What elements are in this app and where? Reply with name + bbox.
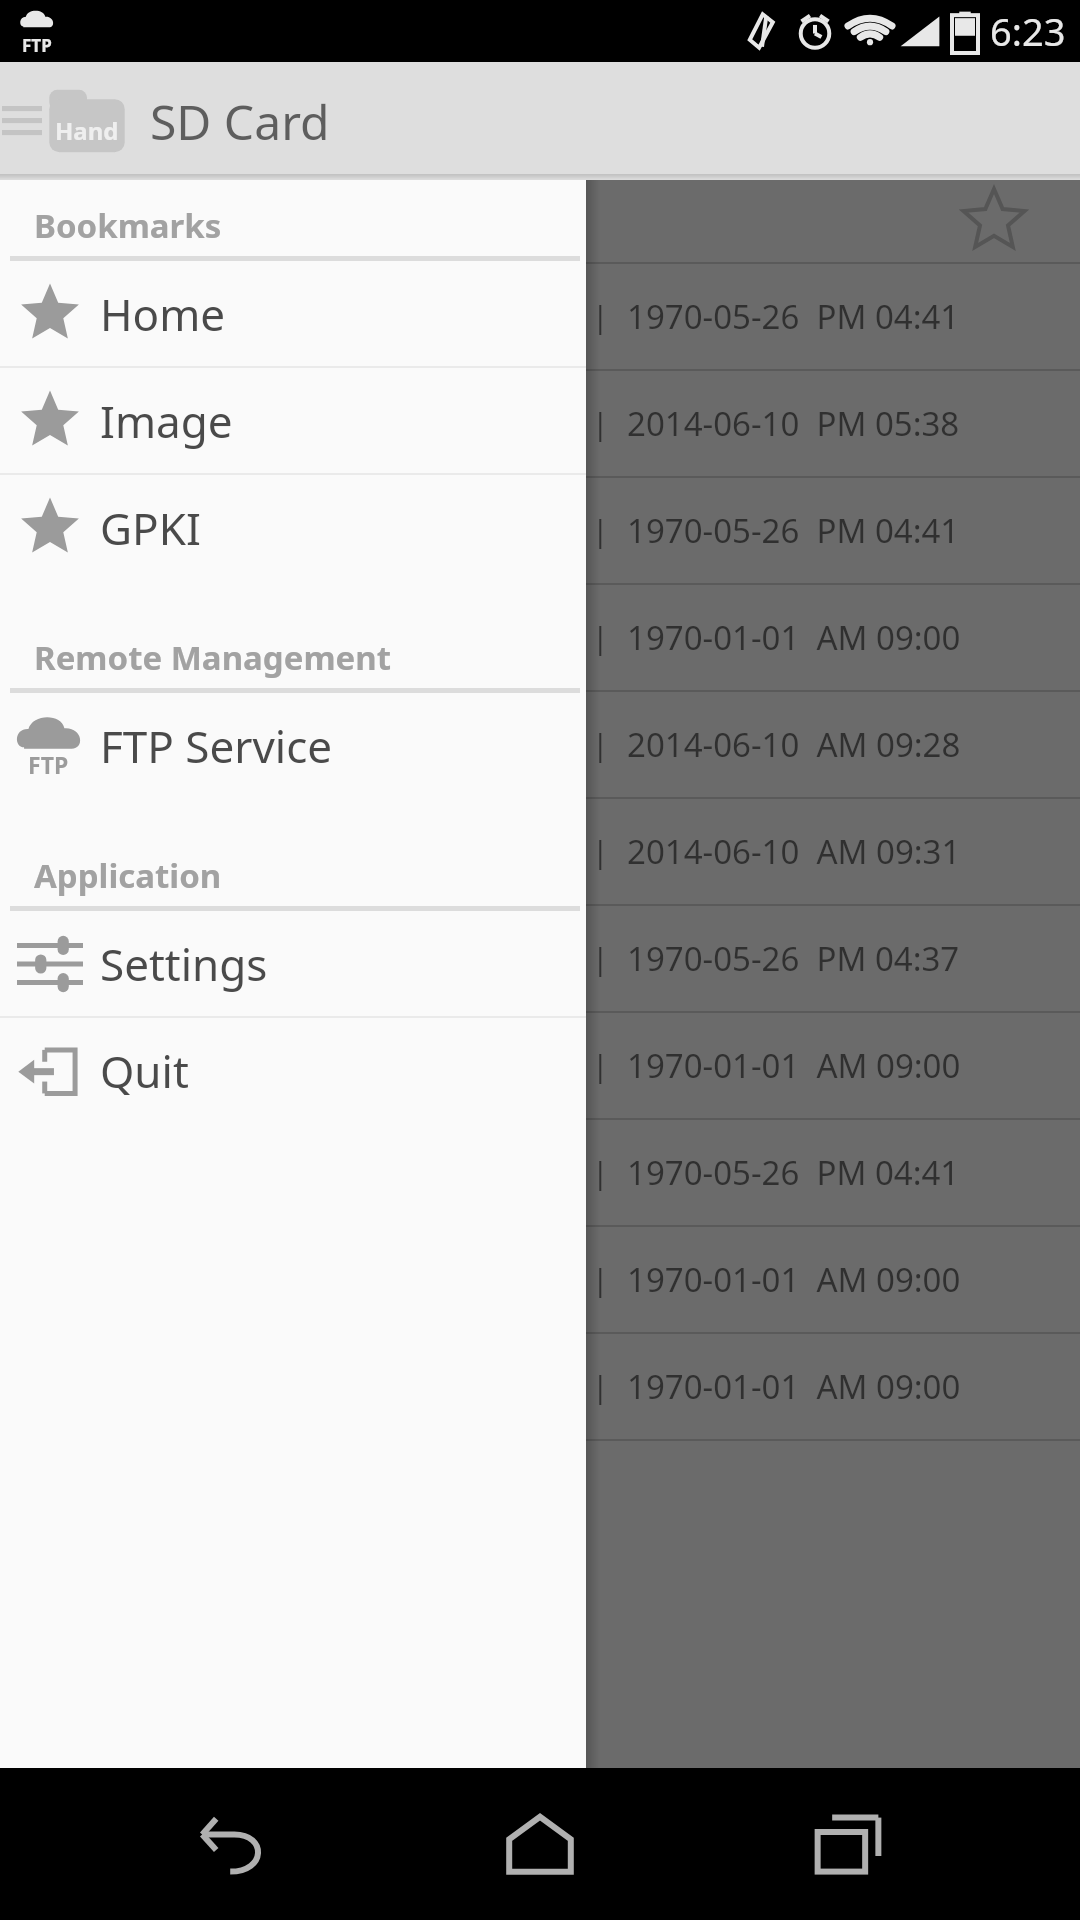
button[interactable]: Settings — [0, 911, 586, 1016]
staticText: | — [592, 296, 609, 337]
staticText: 1970-05-26 PM 04:37 — [627, 936, 960, 981]
staticText: 2014-06-10 AM 09:28 — [627, 722, 961, 767]
staticText: 1970-01-01 AM 09:00 — [627, 615, 961, 660]
button[interactable]: | — [0, 478, 1080, 583]
button[interactable]: | — [0, 1013, 1080, 1118]
staticText: | — [592, 1045, 609, 1086]
staticText: | — [592, 617, 609, 658]
button[interactable]: Quit — [0, 1018, 586, 1123]
staticText: | — [592, 403, 609, 444]
staticText: Application — [34, 853, 222, 898]
button[interactable]: Recent apps — [773, 1768, 923, 1920]
button[interactable]: | — [0, 799, 1080, 904]
staticText: 1970-01-01 AM 09:00 — [627, 1043, 961, 1088]
staticText: Home — [100, 284, 226, 344]
staticText: | — [592, 1152, 609, 1193]
staticText: 2014-06-10 AM 09:31 — [627, 829, 961, 874]
staticText: | — [592, 938, 609, 979]
staticText: | — [592, 831, 609, 872]
button[interactable]: | — [0, 692, 1080, 797]
button[interactable]: | — [0, 906, 1080, 1011]
button[interactable]: | — [0, 1227, 1080, 1332]
staticText: SD Card — [150, 89, 330, 154]
staticText: FTP Service — [100, 716, 333, 776]
staticText: Bookmarks — [34, 203, 222, 248]
button[interactable]: | — [0, 1120, 1080, 1225]
staticText: 6:23 — [990, 5, 1066, 57]
staticText: | — [592, 724, 609, 765]
button[interactable]: | — [0, 264, 1080, 369]
staticText: | — [592, 510, 609, 551]
staticText: Image — [100, 391, 233, 451]
button[interactable]: GPKI — [0, 475, 586, 580]
button[interactable]: Back — [158, 1768, 308, 1920]
staticText: | — [592, 1366, 609, 1407]
staticText: 1970-05-26 PM 04:41 — [627, 1150, 960, 1195]
button[interactable]: Home — [0, 261, 586, 366]
button[interactable]: Home — [465, 1768, 615, 1920]
staticText: FTP — [22, 34, 52, 57]
staticText: 1970-05-26 PM 04:41 — [627, 294, 960, 339]
button[interactable]: | — [0, 1334, 1080, 1439]
button[interactable]: | — [0, 585, 1080, 690]
staticText: | — [592, 1259, 609, 1300]
staticText: 1970-01-01 AM 09:00 — [627, 1257, 961, 1302]
staticText: FTP — [28, 749, 69, 780]
staticText: Remote Management — [34, 635, 392, 680]
staticText: 2014-06-10 PM 05:38 — [627, 401, 960, 446]
staticText: 1970-05-26 PM 04:41 — [627, 508, 960, 553]
staticText: 1970-01-01 AM 09:00 — [627, 1364, 961, 1409]
staticText: Settings — [100, 934, 268, 994]
button[interactable]: Image — [0, 368, 586, 473]
staticText: Quit — [100, 1041, 189, 1101]
staticText: Hand — [55, 114, 119, 147]
staticText: GPKI — [100, 498, 201, 558]
button[interactable]: | — [0, 371, 1080, 476]
button[interactable]: FTP — [0, 693, 586, 798]
button[interactable]: Open navigation drawer — [0, 62, 44, 180]
